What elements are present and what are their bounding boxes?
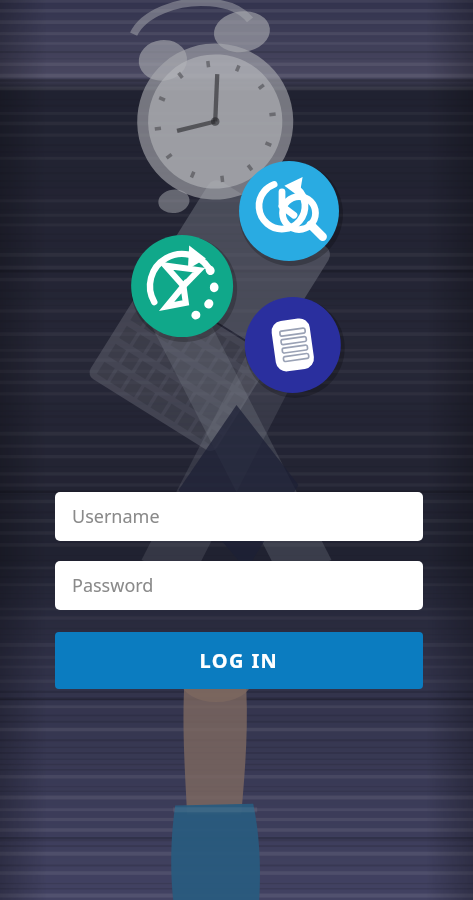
button[interactable]: Password xyxy=(55,561,423,610)
button[interactable] xyxy=(55,632,423,689)
button[interactable]: Username xyxy=(55,492,423,541)
